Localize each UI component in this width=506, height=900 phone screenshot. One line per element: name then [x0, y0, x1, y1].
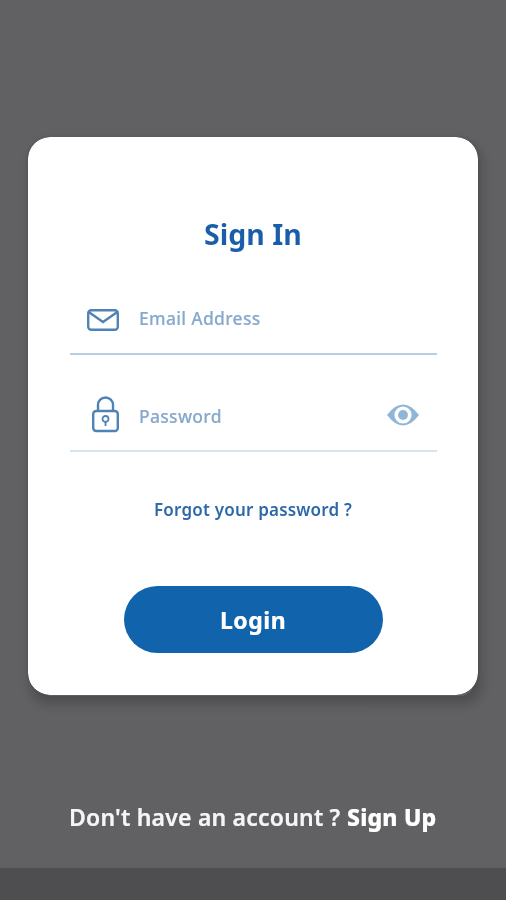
button[interactable]: Forgot your password ? — [154, 498, 353, 521]
button[interactable]: Login — [124, 586, 383, 653]
staticText: Email Address — [139, 306, 261, 330]
button[interactable] — [381, 394, 425, 436]
staticText: Sign Up — [347, 801, 437, 832]
staticText: Login — [220, 604, 287, 635]
button[interactable]: Don't have an account ? — [69, 801, 437, 832]
staticText: Password — [139, 404, 222, 428]
staticText: Sign In — [204, 215, 302, 254]
button[interactable]: Email Address — [70, 295, 437, 353]
button[interactable]: Password — [70, 392, 437, 450]
staticText: Don't have an account ? — [69, 801, 347, 832]
